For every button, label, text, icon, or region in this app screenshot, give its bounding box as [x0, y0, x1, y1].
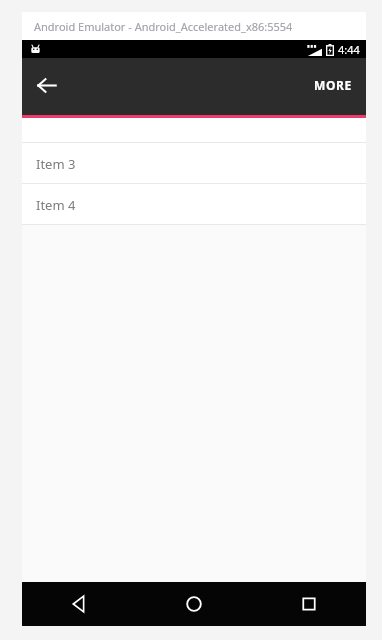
button[interactable]: Recent apps	[251, 582, 366, 626]
button[interactable]	[22, 118, 366, 143]
button[interactable]: Navigate up	[22, 61, 70, 109]
staticText: MORE	[314, 77, 352, 93]
staticText: Item 3	[36, 155, 76, 173]
button[interactable]: Item 4	[22, 184, 366, 225]
button[interactable]: MORE	[300, 56, 366, 113]
staticText: 4:44	[338, 42, 360, 57]
staticText: Item 4	[36, 196, 76, 214]
button[interactable]: Back	[22, 582, 136, 626]
button[interactable]: Home	[136, 582, 251, 626]
button[interactable]: Item 3	[22, 143, 366, 184]
staticText: Android Emulator - Android_Accelerated_x…	[34, 19, 293, 34]
